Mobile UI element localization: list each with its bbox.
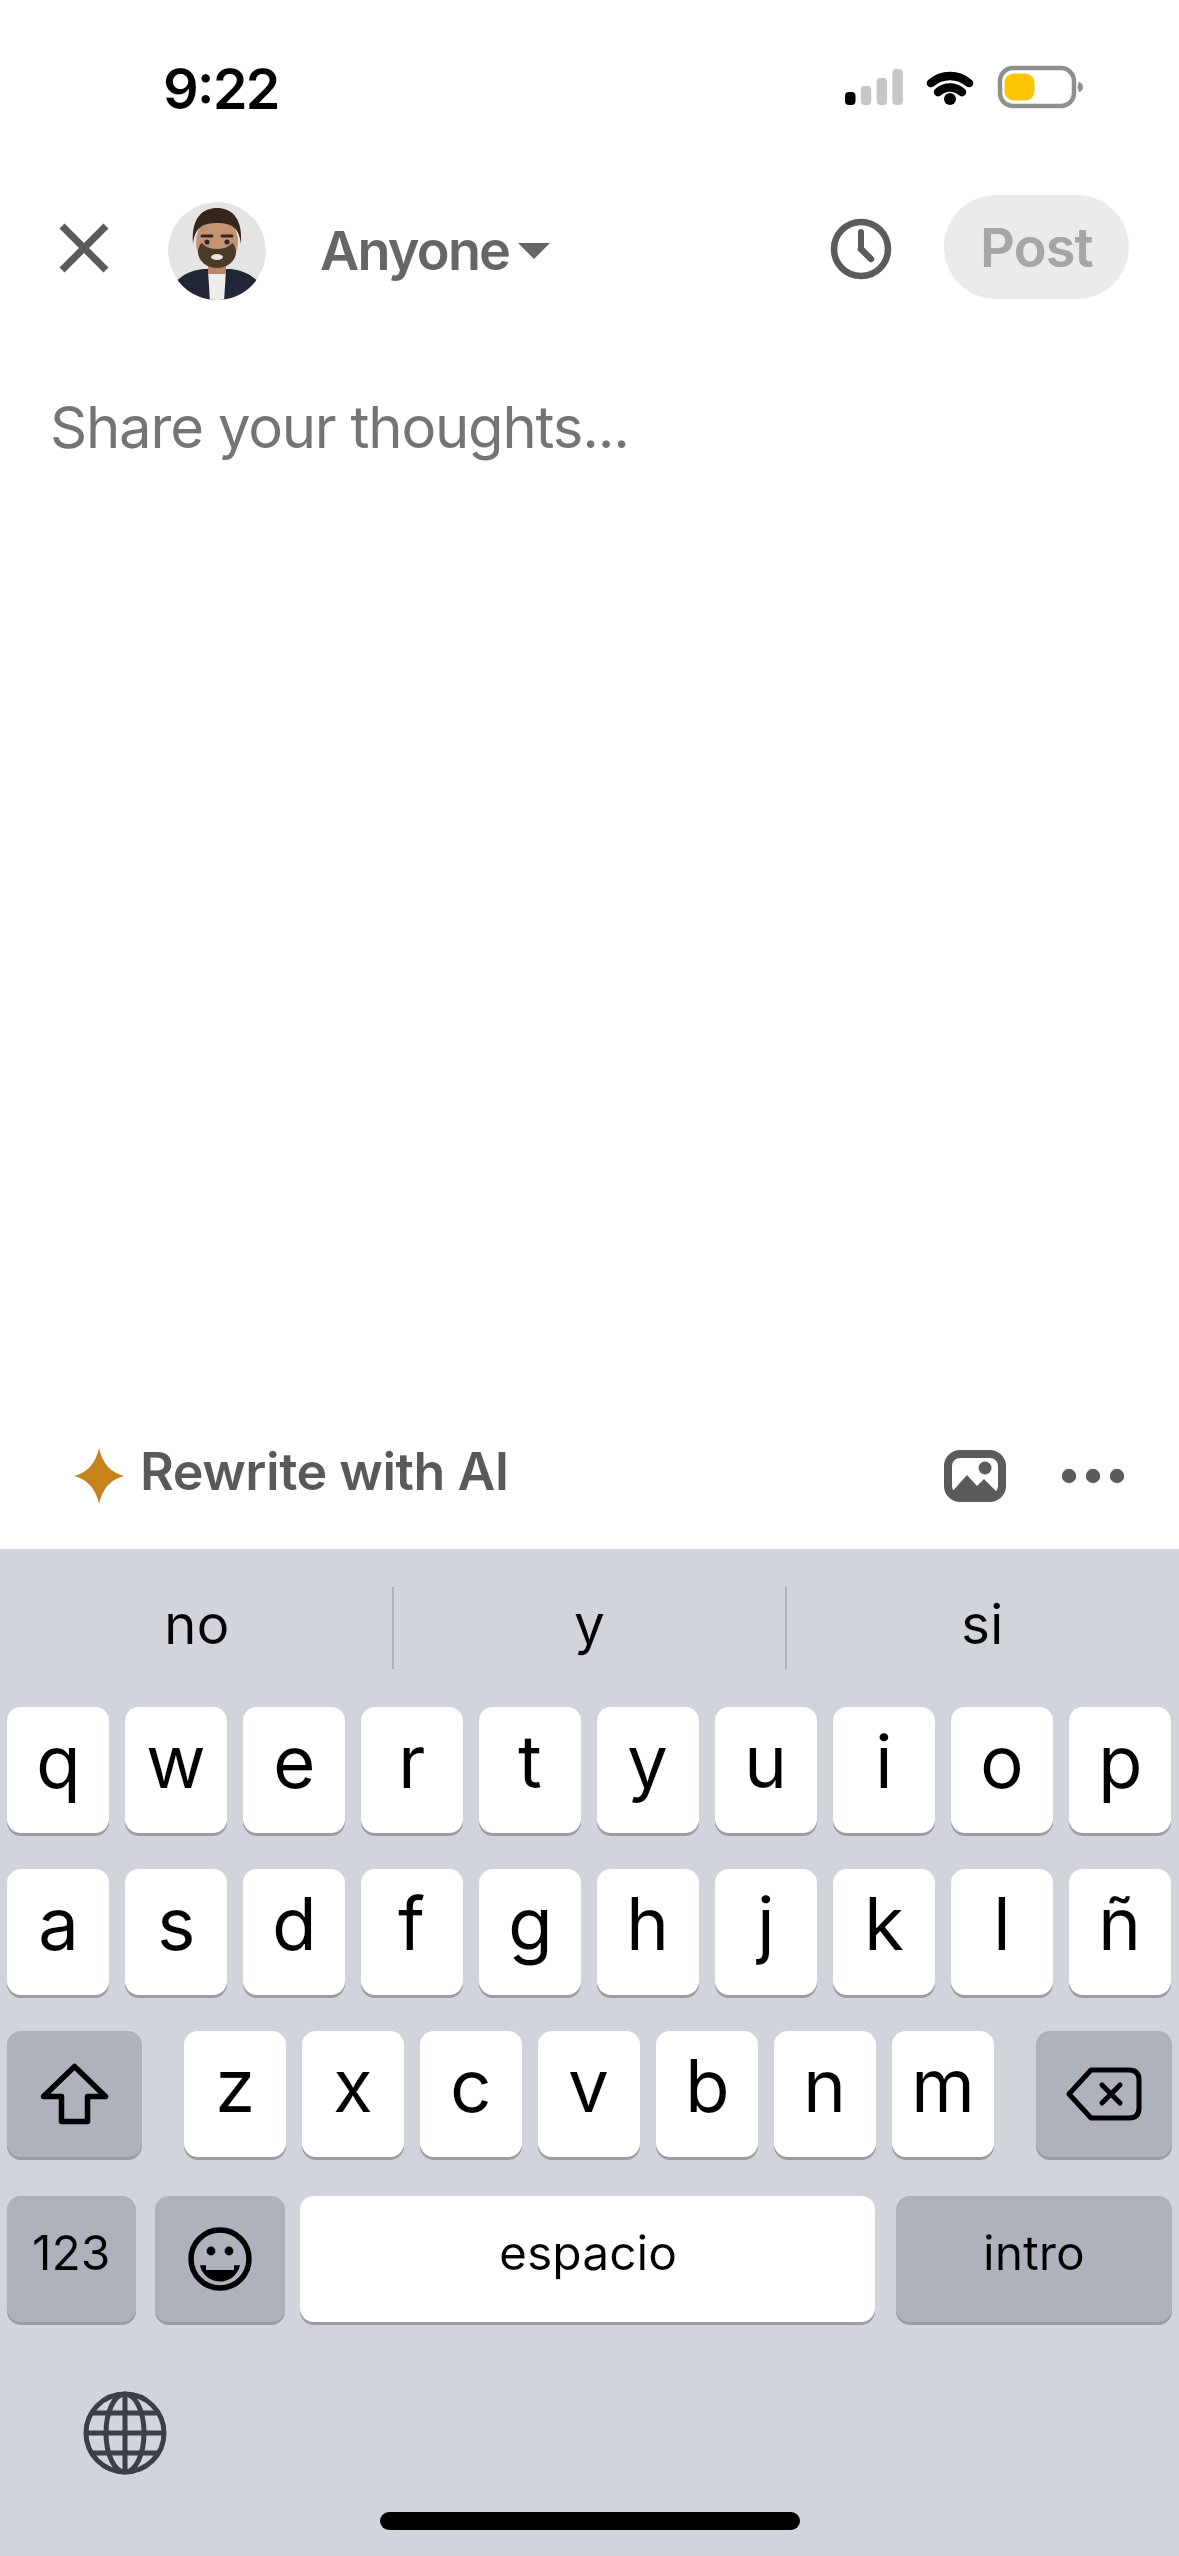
button[interactable]: w — [125, 1707, 227, 1833]
staticText: l — [993, 1879, 1011, 1967]
button[interactable]: j — [715, 1869, 817, 1995]
button[interactable]: i — [833, 1707, 935, 1833]
staticText: i — [875, 1717, 893, 1805]
staticText: si — [961, 1591, 1004, 1657]
button[interactable]: r — [361, 1707, 463, 1833]
staticText: e — [273, 1717, 316, 1805]
staticText: intro — [983, 2223, 1085, 2281]
staticText: g — [508, 1879, 553, 1967]
button[interactable]: o — [951, 1707, 1053, 1833]
staticText: Post — [980, 215, 1093, 280]
button[interactable] — [932, 1438, 1018, 1514]
staticText: r — [398, 1717, 426, 1805]
staticText: 9:22 — [163, 55, 279, 123]
staticText: o — [980, 1717, 1024, 1805]
button[interactable]: Anyone — [310, 205, 570, 295]
button[interactable] — [824, 212, 898, 286]
button[interactable] — [44, 208, 124, 288]
button[interactable]: x — [302, 2031, 404, 2157]
button[interactable]: c — [420, 2031, 522, 2157]
staticText: c — [450, 2041, 492, 2129]
staticText: a — [38, 1879, 79, 1967]
button[interactable]: ñ — [1069, 1869, 1171, 1995]
button[interactable]: f — [361, 1869, 463, 1995]
staticText: u — [744, 1717, 788, 1805]
button[interactable]: v — [538, 2031, 640, 2157]
button[interactable] — [7, 2031, 142, 2157]
button[interactable]: t — [479, 1707, 581, 1833]
staticText: y — [574, 1591, 605, 1657]
staticText: y — [627, 1717, 669, 1805]
staticText: espacio — [499, 2223, 677, 2281]
staticText: z — [215, 2041, 256, 2129]
staticText: Rewrite with AI — [140, 1440, 509, 1503]
staticText: Share your thoughts... — [50, 392, 629, 462]
button[interactable] — [0, 360, 1179, 1420]
button[interactable]: espacio — [300, 2196, 875, 2322]
staticText: s — [157, 1879, 196, 1967]
button[interactable] — [168, 202, 266, 300]
staticText: t — [518, 1717, 542, 1805]
button[interactable] — [1036, 2031, 1172, 2157]
staticText: b — [685, 2041, 730, 2129]
button[interactable]: u — [715, 1707, 817, 1833]
button[interactable]: m — [892, 2031, 994, 2157]
button[interactable] — [1044, 1438, 1144, 1514]
staticText: 123 — [32, 2223, 111, 2281]
staticText: h — [626, 1879, 670, 1967]
button[interactable] — [70, 2378, 180, 2488]
button[interactable]: a — [7, 1869, 109, 1995]
button[interactable]: Post — [944, 195, 1129, 299]
staticText: v — [568, 2041, 610, 2129]
staticText: x — [333, 2041, 373, 2129]
staticText: d — [272, 1879, 317, 1967]
button[interactable]: l — [951, 1869, 1053, 1995]
staticText: m — [911, 2041, 975, 2129]
staticText: ñ — [1098, 1879, 1142, 1967]
button[interactable]: n — [774, 2031, 876, 2157]
staticText: n — [803, 2041, 847, 2129]
button[interactable]: q — [7, 1707, 109, 1833]
button[interactable]: y — [597, 1707, 699, 1833]
staticText: q — [36, 1717, 81, 1805]
button[interactable]: p — [1069, 1707, 1171, 1833]
staticText: no — [164, 1591, 230, 1657]
button[interactable]: b — [656, 2031, 758, 2157]
staticText: Anyone — [320, 218, 510, 283]
button[interactable]: g — [479, 1869, 581, 1995]
button[interactable]: k — [833, 1869, 935, 1995]
staticText: f — [398, 1879, 426, 1967]
button[interactable]: y — [393, 1595, 786, 1661]
button[interactable]: Rewrite with AI — [60, 1436, 530, 1516]
button[interactable]: no — [0, 1595, 393, 1661]
button[interactable]: s — [125, 1869, 227, 1995]
staticText: j — [757, 1879, 775, 1967]
button[interactable]: si — [786, 1595, 1179, 1661]
button[interactable]: e — [243, 1707, 345, 1833]
button[interactable]: 123 — [7, 2196, 136, 2322]
button[interactable]: d — [243, 1869, 345, 1995]
button[interactable]: z — [184, 2031, 286, 2157]
button[interactable]: h — [597, 1869, 699, 1995]
button[interactable] — [155, 2196, 285, 2322]
staticText: p — [1098, 1717, 1143, 1805]
staticText: w — [146, 1717, 206, 1805]
button[interactable]: intro — [896, 2196, 1172, 2322]
staticText: k — [864, 1879, 905, 1967]
